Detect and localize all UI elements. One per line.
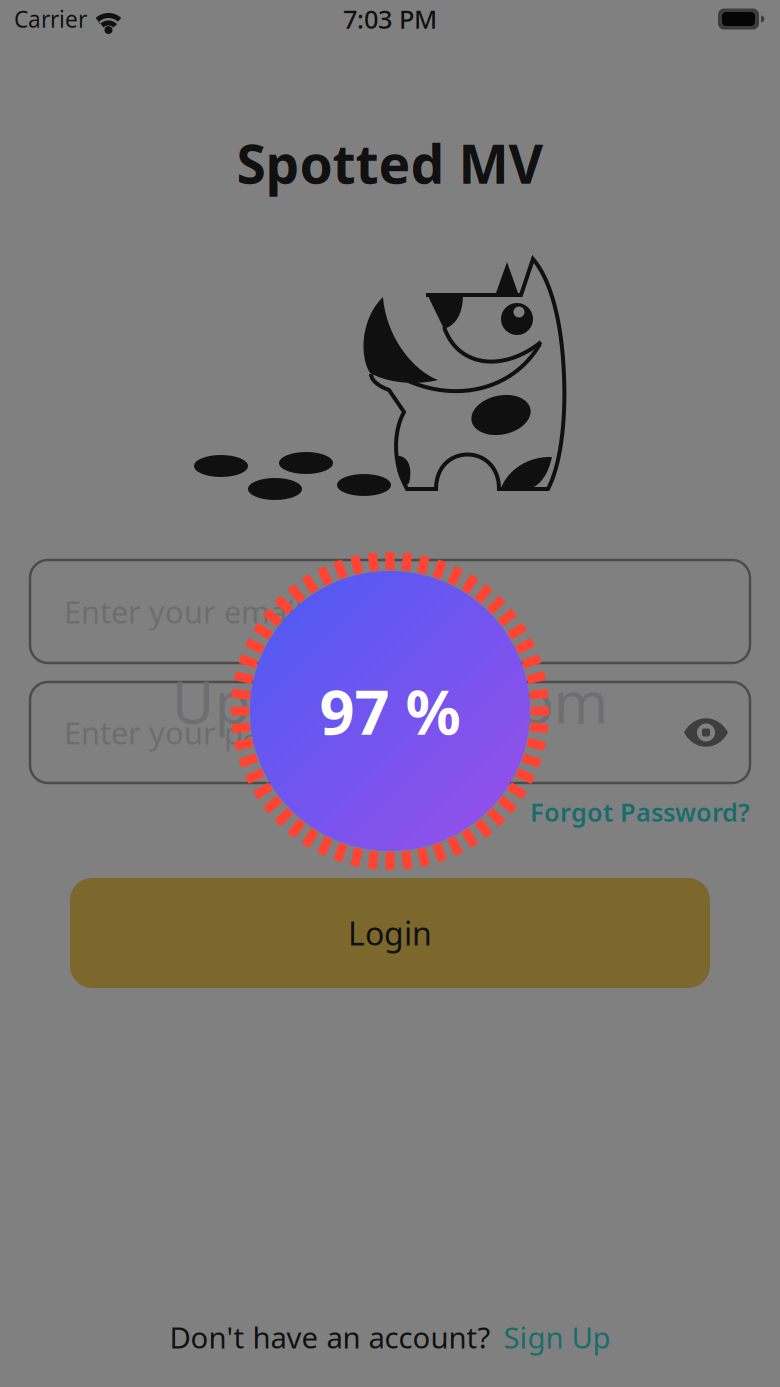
staticText: Don't have an account? (169, 1317, 490, 1356)
staticText: Carrier (14, 4, 87, 34)
button[interactable]: Forgot Password? (530, 795, 750, 829)
staticText: Enter your email (64, 591, 303, 632)
staticText: UpdateStar.com (171, 662, 608, 740)
staticText: 7:03 PM (343, 2, 437, 36)
staticText: Spotted MV (236, 128, 543, 198)
button[interactable]: Enter your password (30, 682, 750, 783)
staticText: Enter your password (64, 712, 364, 753)
button[interactable]: Enter your email (30, 560, 750, 663)
staticText: Sign Up (503, 1317, 610, 1356)
button[interactable]: Sign Up (503, 1317, 610, 1356)
button[interactable]: Login (70, 878, 710, 988)
staticText: Login (348, 912, 432, 954)
staticText: 97 % (319, 670, 460, 752)
staticText: Forgot Password? (530, 795, 750, 829)
